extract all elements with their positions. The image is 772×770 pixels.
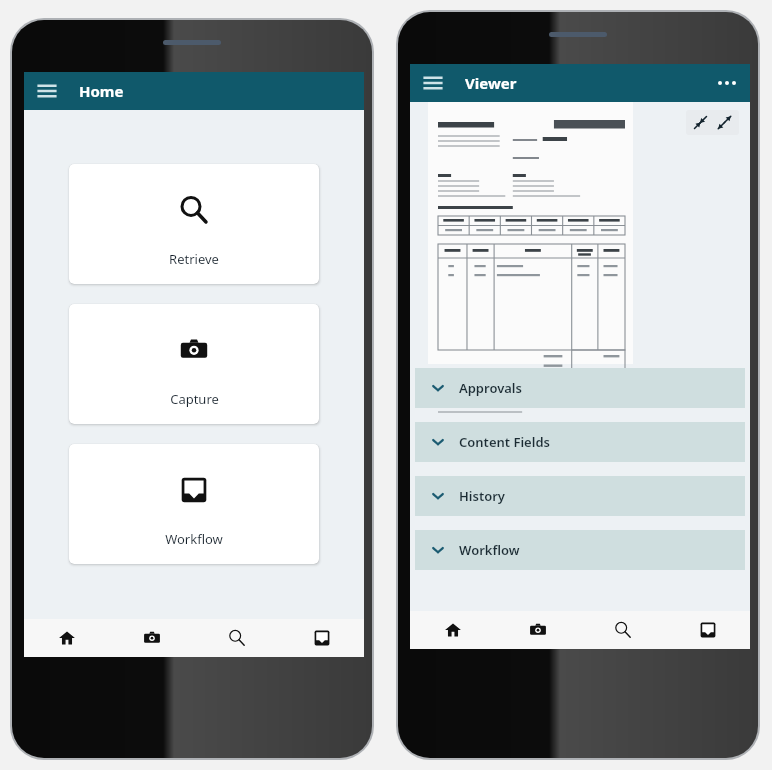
button[interactable]: Workflow xyxy=(665,611,750,649)
button[interactable]: Capture xyxy=(109,619,194,657)
button[interactable]: History xyxy=(415,476,745,516)
staticText: Home xyxy=(79,81,124,101)
staticText: Content Fields xyxy=(459,433,550,451)
button[interactable]: Workflow xyxy=(415,530,745,570)
button[interactable]: Home xyxy=(410,611,495,649)
button[interactable]: Full screen xyxy=(717,115,732,130)
button[interactable]: Content Fields xyxy=(415,422,745,462)
staticText: Viewer xyxy=(465,73,517,93)
staticText: Approvals xyxy=(459,379,522,397)
button[interactable]: Fit to screen xyxy=(693,115,708,130)
staticText: History xyxy=(459,487,505,505)
button[interactable]: Workflow xyxy=(279,619,364,657)
button[interactable]: Search xyxy=(194,619,279,657)
button[interactable]: More options xyxy=(716,72,738,94)
button[interactable]: Home xyxy=(24,619,109,657)
button[interactable]: Retrieve xyxy=(69,164,319,284)
button[interactable]: Approvals xyxy=(415,368,745,408)
button[interactable]: Workflow xyxy=(69,444,319,564)
staticText: Capture xyxy=(170,390,219,408)
button[interactable]: Capture xyxy=(69,304,319,424)
staticText: Workflow xyxy=(165,530,223,548)
button[interactable]: Capture xyxy=(495,611,580,649)
staticText: Workflow xyxy=(459,541,520,559)
button[interactable]: Menu xyxy=(35,79,59,103)
staticText: Retrieve xyxy=(169,250,219,268)
button[interactable]: Search xyxy=(580,611,665,649)
button[interactable]: Menu xyxy=(421,71,445,95)
